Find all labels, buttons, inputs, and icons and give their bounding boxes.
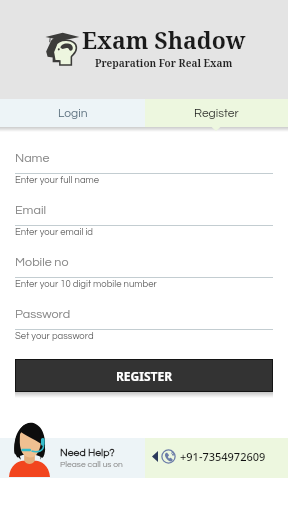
staticText: Set your password (15, 331, 94, 341)
staticText: Enter your email id (15, 227, 94, 237)
button[interactable]: REGISTER (16, 360, 272, 391)
staticText: Need Help? (60, 447, 115, 458)
button[interactable]: Password (15, 301, 273, 353)
staticText: Enter your full name (15, 175, 100, 185)
staticText: Enter your 10 digit mobile number (15, 279, 157, 289)
button[interactable]: Call support (152, 436, 266, 476)
staticText: Login (58, 107, 88, 119)
button[interactable]: Email (15, 197, 273, 249)
staticText: Register (194, 107, 239, 119)
staticText: Password (15, 308, 71, 321)
staticText: Please call us on (60, 460, 123, 469)
button[interactable]: Login (0, 99, 145, 127)
staticText: Exam Shadow (82, 24, 246, 55)
staticText: +91-7354972609 (180, 449, 266, 464)
button[interactable]: Name (15, 145, 273, 197)
staticText: REGISTER (116, 368, 173, 384)
staticText: Name (15, 152, 50, 165)
staticText: Email (15, 204, 47, 217)
button[interactable]: Register (145, 99, 288, 127)
button[interactable]: Mobile no (15, 249, 273, 301)
staticText: Preparation For Real Exam (95, 56, 233, 70)
staticText: Mobile no (15, 256, 69, 269)
